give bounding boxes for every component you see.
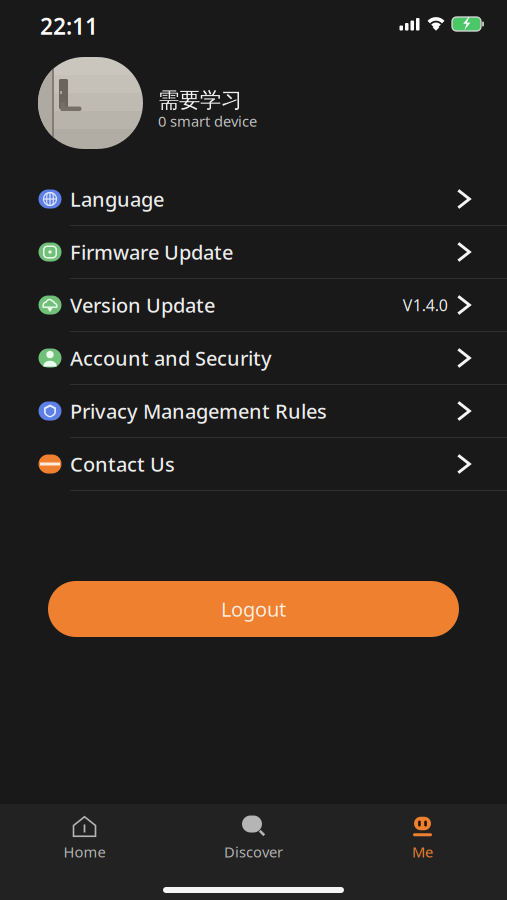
- button[interactable]: Version Update: [0, 279, 507, 332]
- staticText: Privacy Management Rules: [70, 398, 327, 424]
- staticText: 0 smart device: [158, 111, 257, 131]
- button[interactable]: 需要学习: [0, 48, 507, 158]
- staticText: Firmware Update: [70, 239, 233, 265]
- staticText: Version Update: [70, 292, 215, 318]
- button[interactable]: Me: [338, 804, 507, 873]
- staticText: 22:11: [40, 11, 98, 41]
- button[interactable]: Home: [0, 804, 169, 873]
- staticText: V1.4.0: [403, 294, 448, 316]
- button[interactable]: Firmware Update: [0, 226, 507, 279]
- staticText: Me: [412, 842, 433, 861]
- button[interactable]: Discover: [169, 804, 338, 873]
- button[interactable]: Logout: [48, 581, 459, 637]
- button[interactable]: Language: [0, 173, 507, 226]
- staticText: Discover: [224, 842, 283, 861]
- staticText: Account and Security: [70, 345, 272, 371]
- staticText: 需要学习: [158, 87, 242, 113]
- staticText: Logout: [221, 596, 286, 622]
- staticText: Language: [70, 186, 164, 212]
- button[interactable]: Contact Us: [0, 438, 507, 491]
- staticText: Contact Us: [70, 451, 175, 477]
- button[interactable]: Privacy Management Rules: [0, 385, 507, 438]
- staticText: Home: [63, 842, 105, 861]
- button[interactable]: Account and Security: [0, 332, 507, 385]
